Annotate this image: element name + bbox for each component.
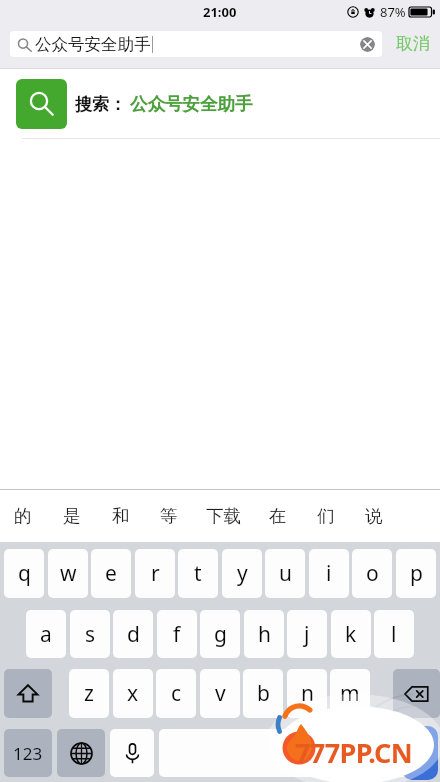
- staticText: u: [279, 559, 292, 588]
- staticText: i: [326, 559, 332, 588]
- staticText: h: [258, 620, 271, 649]
- staticText: 等: [160, 505, 178, 527]
- staticText: n: [301, 679, 314, 708]
- staticText: w: [60, 559, 77, 588]
- staticText: m: [340, 679, 360, 708]
- button[interactable]: t: [178, 549, 218, 598]
- button[interactable]: r: [135, 549, 175, 598]
- staticText: a: [40, 620, 52, 649]
- button[interactable]: 说: [350, 489, 398, 542]
- staticText: 777PP.CN: [295, 734, 413, 771]
- staticText: 和: [112, 505, 130, 527]
- button[interactable]: 是: [47, 489, 96, 542]
- button[interactable]: Backspace: [393, 669, 440, 718]
- button[interactable]: 和: [96, 489, 145, 542]
- button[interactable]: g: [200, 610, 240, 658]
- button[interactable]: 123: [4, 729, 52, 777]
- staticText: 公众号安全助手: [35, 34, 151, 55]
- button[interactable]: y: [222, 549, 262, 598]
- staticText: 取消: [396, 33, 430, 54]
- staticText: p: [410, 559, 423, 588]
- button[interactable]: e: [91, 549, 131, 598]
- button[interactable]: x: [113, 669, 153, 718]
- button[interactable]: 在: [254, 489, 302, 542]
- button[interactable]: b: [243, 669, 283, 718]
- staticText: 下载: [206, 505, 241, 527]
- staticText: f: [173, 620, 181, 649]
- button[interactable]: k: [331, 610, 371, 658]
- button[interactable]: 搜索：: [0, 69, 440, 138]
- staticText: 123: [13, 742, 43, 765]
- button[interactable]: Clear text: [360, 37, 375, 52]
- button[interactable]: 公众号安全助手: [10, 31, 382, 57]
- button[interactable]: f: [157, 610, 197, 658]
- button[interactable]: a: [26, 610, 66, 658]
- button[interactable]: z: [69, 669, 109, 718]
- button[interactable]: v: [200, 669, 240, 718]
- button[interactable]: m: [330, 669, 370, 718]
- staticText: v: [215, 679, 226, 708]
- staticText: x: [127, 679, 139, 708]
- staticText: 21:00: [203, 3, 237, 21]
- staticText: 在: [269, 505, 287, 527]
- staticText: 是: [63, 505, 81, 527]
- staticText: 87%: [380, 3, 406, 21]
- staticText: 的: [14, 505, 32, 527]
- staticText: j: [304, 620, 310, 649]
- staticText: c: [171, 679, 182, 708]
- staticText: 说: [365, 505, 383, 527]
- button[interactable]: 取消: [389, 30, 437, 56]
- button[interactable]: j: [287, 610, 327, 658]
- button[interactable]: h: [244, 610, 284, 658]
- button[interactable]: 等: [145, 489, 193, 542]
- button[interactable]: q: [4, 549, 44, 598]
- button[interactable]: 们: [302, 489, 350, 542]
- button[interactable]: c: [156, 669, 196, 718]
- button[interactable]: i: [309, 549, 349, 598]
- staticText: o: [366, 559, 379, 588]
- button[interactable]: w: [48, 549, 88, 598]
- staticText: t: [194, 559, 202, 588]
- staticText: e: [105, 559, 117, 588]
- staticText: g: [214, 620, 227, 649]
- staticText: s: [85, 620, 96, 649]
- staticText: y: [237, 559, 248, 588]
- button[interactable]: p: [396, 549, 436, 598]
- button[interactable]: Voice input: [110, 729, 154, 777]
- staticText: 空格: [282, 743, 314, 763]
- staticText: k: [345, 620, 357, 649]
- button[interactable]: n: [287, 669, 327, 718]
- button[interactable]: 下载: [193, 489, 254, 542]
- button[interactable]: 空格: [159, 729, 436, 777]
- button[interactable]: d: [113, 610, 153, 658]
- button[interactable]: Shift: [4, 669, 52, 718]
- staticText: 们: [317, 505, 335, 527]
- staticText: 搜索：: [75, 94, 126, 115]
- button[interactable]: Switch keyboard language: [57, 729, 105, 777]
- button[interactable]: o: [352, 549, 392, 598]
- staticText: r: [151, 559, 160, 588]
- staticText: d: [127, 620, 140, 649]
- staticText: q: [18, 559, 31, 588]
- staticText: b: [257, 679, 270, 708]
- button[interactable]: l: [374, 610, 414, 658]
- button[interactable]: u: [265, 549, 305, 598]
- staticText: l: [391, 620, 397, 649]
- button[interactable]: s: [70, 610, 110, 658]
- staticText: z: [84, 679, 94, 708]
- button[interactable]: 的: [0, 489, 47, 542]
- staticText: 公众号安全助手: [130, 93, 253, 115]
